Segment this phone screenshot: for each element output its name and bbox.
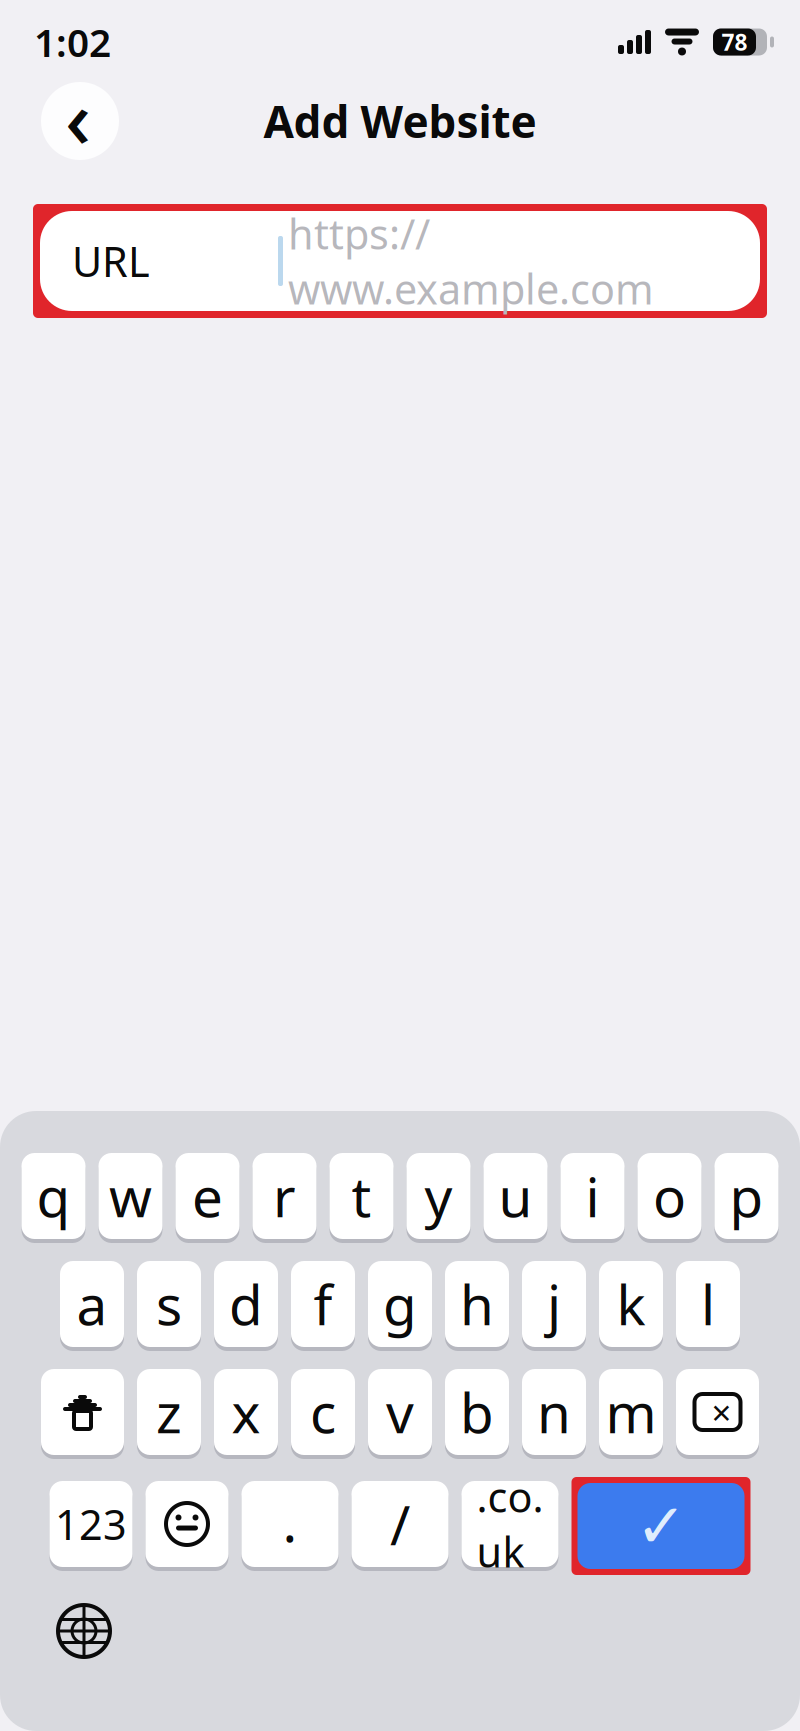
staticText: w (109, 1160, 152, 1232)
button[interactable]: w (98, 1153, 162, 1243)
button[interactable]: m (599, 1369, 663, 1459)
staticText: c (310, 1376, 336, 1448)
staticText: g (383, 1268, 417, 1340)
button[interactable]: n (522, 1369, 586, 1459)
staticText: × (711, 1389, 731, 1435)
button[interactable]: k (599, 1261, 663, 1351)
button[interactable]: . (241, 1481, 338, 1571)
button[interactable]: g (368, 1261, 432, 1351)
button[interactable]: l (676, 1261, 740, 1351)
button[interactable]: URL (33, 204, 767, 318)
button[interactable]: / (351, 1481, 448, 1571)
button[interactable]: r (252, 1153, 316, 1243)
button[interactable]: 123 (49, 1481, 132, 1571)
button[interactable]: .co.uk (461, 1481, 558, 1571)
button[interactable]: i (560, 1153, 624, 1243)
button[interactable]: Shift (41, 1369, 124, 1459)
staticText: t (351, 1160, 371, 1232)
button[interactable]: s (137, 1261, 201, 1351)
staticText: n (537, 1376, 571, 1448)
button[interactable]: y (406, 1153, 470, 1243)
button[interactable]: p (714, 1153, 778, 1243)
staticText: o (653, 1160, 686, 1232)
staticText: a (76, 1268, 107, 1340)
button[interactable]: Emoji (145, 1481, 228, 1571)
button[interactable]: a (60, 1261, 124, 1351)
button[interactable]: f (291, 1261, 355, 1351)
staticText: d (229, 1268, 263, 1340)
button[interactable]: Go (571, 1477, 750, 1575)
button[interactable]: e (175, 1153, 239, 1243)
button[interactable]: j (522, 1261, 586, 1351)
staticText: x (231, 1376, 260, 1448)
staticText: v (386, 1376, 414, 1448)
staticText: URL (72, 234, 150, 288)
staticText: b (460, 1376, 494, 1448)
staticText: 78 (721, 27, 747, 57)
staticText: m (605, 1376, 656, 1448)
staticText: 123 (55, 1497, 127, 1551)
staticText: / (390, 1488, 410, 1560)
staticText: e (192, 1160, 223, 1232)
button[interactable]: b (445, 1369, 509, 1459)
staticText: j (547, 1268, 561, 1340)
staticText: h (460, 1268, 494, 1340)
button[interactable]: h (445, 1261, 509, 1351)
button[interactable]: t (329, 1153, 393, 1243)
staticText: s (156, 1268, 182, 1340)
staticText: Add Website (263, 92, 536, 150)
button[interactable]: v (368, 1369, 432, 1459)
staticText: z (156, 1376, 182, 1448)
button[interactable]: c (291, 1369, 355, 1459)
button[interactable]: o (637, 1153, 701, 1243)
staticText: i (585, 1160, 599, 1232)
staticText: r (273, 1160, 296, 1232)
staticText: .co.uk (476, 1469, 543, 1579)
button[interactable]: Back (41, 82, 119, 160)
button[interactable]: d (214, 1261, 278, 1351)
staticText: ✓ (635, 1491, 686, 1561)
staticText: k (616, 1268, 645, 1340)
staticText: p (729, 1160, 763, 1232)
staticText: 1:02 (34, 16, 111, 68)
staticText: l (701, 1268, 715, 1340)
button[interactable]: x (214, 1369, 278, 1459)
staticText: ‹ (65, 64, 91, 170)
staticText: q (36, 1160, 70, 1232)
button[interactable]: u (483, 1153, 547, 1243)
staticText: https://www.example.com (288, 206, 654, 316)
staticText: . (282, 1485, 297, 1557)
button[interactable]: Change keyboard (42, 1589, 126, 1673)
button[interactable]: z (137, 1369, 201, 1459)
staticText: f (313, 1268, 332, 1340)
staticText: y (424, 1160, 452, 1232)
staticText: u (498, 1160, 532, 1232)
button[interactable]: Delete (676, 1369, 759, 1459)
button[interactable]: q (21, 1153, 85, 1243)
